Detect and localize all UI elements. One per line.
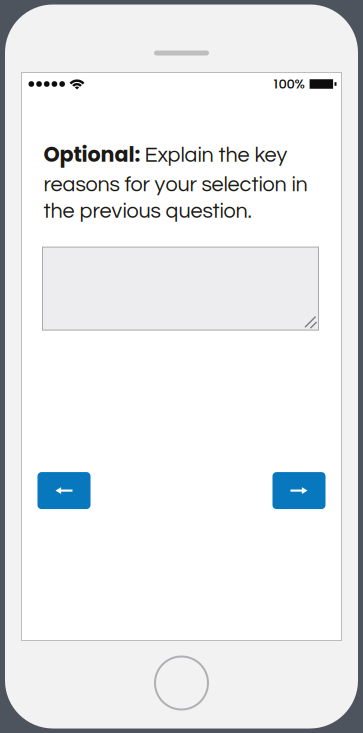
staticText: Optional: Explain the key reasons for yo… <box>43 140 307 222</box>
button[interactable]: Previous question <box>37 472 90 509</box>
staticText: 100% <box>274 75 305 93</box>
button[interactable]: Next question <box>272 472 325 509</box>
